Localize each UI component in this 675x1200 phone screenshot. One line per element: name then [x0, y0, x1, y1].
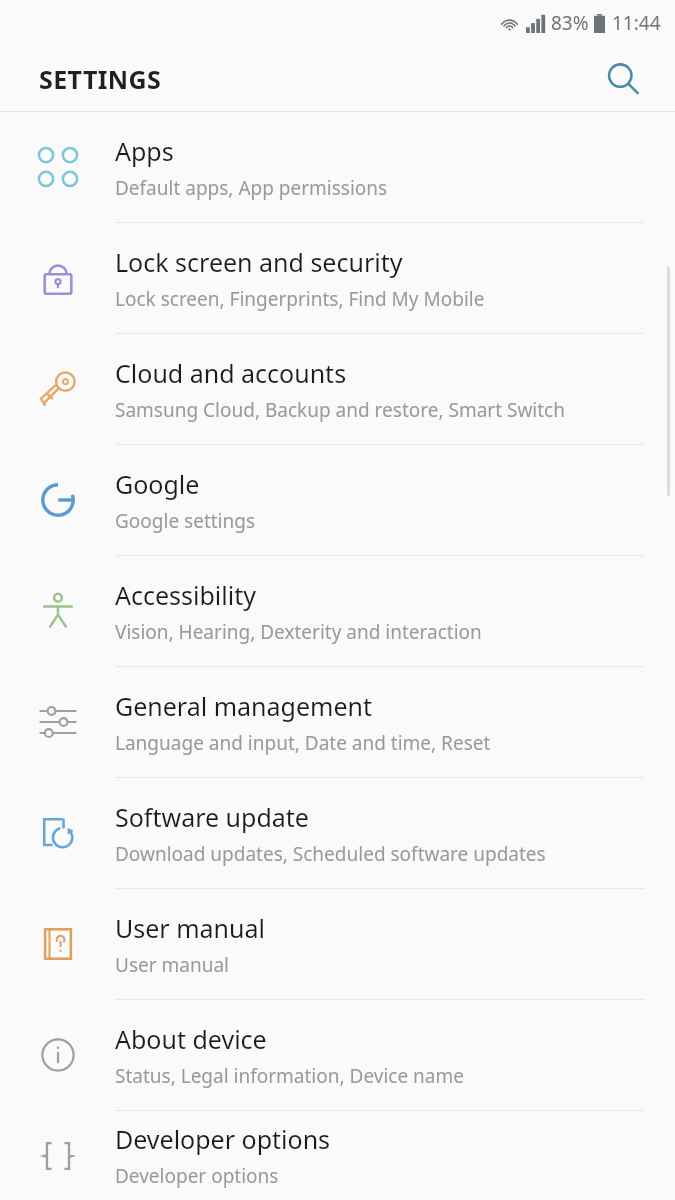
- staticText: User manual: [115, 911, 265, 945]
- button[interactable]: Apps: [0, 112, 675, 222]
- button[interactable]: Cloud and accounts: [0, 334, 675, 444]
- staticText: About device: [115, 1022, 267, 1056]
- button[interactable]: Developer options: [0, 1111, 675, 1200]
- staticText: Developer options: [115, 1163, 279, 1189]
- staticText: Google: [115, 467, 200, 501]
- button[interactable]: General management: [0, 667, 675, 777]
- staticText: 83%: [551, 10, 589, 36]
- button[interactable]: Search: [595, 51, 651, 107]
- staticText: Cloud and accounts: [115, 356, 347, 390]
- staticText: Apps: [115, 134, 174, 168]
- button[interactable]: Lock screen and security: [0, 223, 675, 333]
- staticText: Status, Legal information, Device name: [115, 1063, 464, 1089]
- staticText: Lock screen, Fingerprints, Find My Mobil…: [115, 286, 485, 312]
- staticText: General management: [115, 689, 372, 723]
- staticText: Lock screen and security: [115, 245, 403, 279]
- staticText: Download updates, Scheduled software upd…: [115, 841, 546, 867]
- button[interactable]: Software update: [0, 778, 675, 888]
- staticText: Accessibility: [115, 578, 256, 612]
- button[interactable]: Accessibility: [0, 556, 675, 666]
- staticText: Default apps, App permissions: [115, 175, 388, 201]
- staticText: Software update: [115, 800, 309, 834]
- button[interactable]: About device: [0, 1000, 675, 1110]
- staticText: Developer options: [115, 1122, 331, 1156]
- staticText: Samsung Cloud, Backup and restore, Smart…: [115, 397, 565, 423]
- staticText: 11:44: [612, 10, 661, 36]
- staticText: SETTINGS: [39, 62, 162, 96]
- staticText: User manual: [115, 952, 229, 978]
- button[interactable]: User manual: [0, 889, 675, 999]
- staticText: Vision, Hearing, Dexterity and interacti…: [115, 619, 482, 645]
- staticText: Google settings: [115, 508, 256, 534]
- staticText: Language and input, Date and time, Reset: [115, 730, 491, 756]
- button[interactable]: Google: [0, 445, 675, 555]
